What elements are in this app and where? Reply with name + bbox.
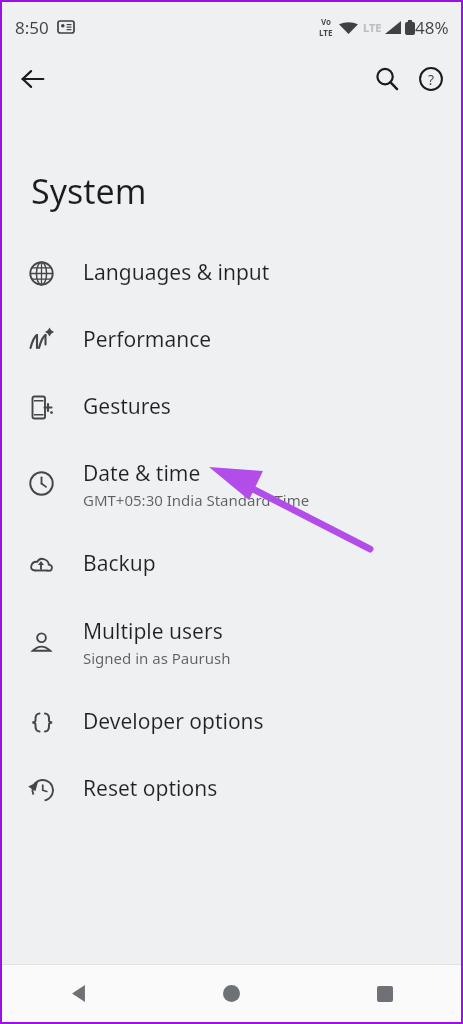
- staticText: ?: [428, 70, 435, 89]
- staticText: 8:50: [15, 16, 49, 39]
- button[interactable]: Developer options: [2, 690, 461, 750]
- button[interactable]: Multiple users: [2, 603, 461, 677]
- button[interactable]: Recent apps: [308, 965, 461, 1022]
- staticText: Developer options: [83, 707, 264, 736]
- button[interactable]: Back: [2, 965, 155, 1022]
- staticText: Vo: [321, 16, 332, 27]
- button[interactable]: Gestures: [2, 375, 461, 435]
- button[interactable]: Reset options: [2, 757, 461, 817]
- staticText: LTE: [363, 20, 382, 35]
- button[interactable]: Backup: [2, 532, 461, 592]
- button[interactable]: Home: [155, 965, 308, 1022]
- staticText: Languages & input: [83, 258, 270, 287]
- button[interactable]: Performance: [2, 308, 461, 368]
- staticText: Reset options: [83, 774, 218, 803]
- staticText: Performance: [83, 325, 212, 354]
- button[interactable]: Help: [409, 57, 453, 101]
- staticText: 48%: [415, 16, 449, 39]
- staticText: Date & time: [83, 459, 201, 488]
- staticText: LTE: [319, 27, 333, 38]
- staticText: Signed in as Paurush: [83, 648, 231, 668]
- staticText: Gestures: [83, 392, 171, 421]
- button[interactable]: Search: [365, 57, 409, 101]
- staticText: GMT+05:30 India Standard Time: [83, 490, 310, 510]
- button[interactable]: Back: [11, 57, 55, 101]
- button[interactable]: Languages & input: [2, 241, 461, 301]
- staticText: Multiple users: [83, 617, 223, 646]
- staticText: Backup: [83, 549, 156, 578]
- staticText: System: [31, 168, 147, 214]
- button[interactable]: Date & time: [2, 444, 461, 518]
